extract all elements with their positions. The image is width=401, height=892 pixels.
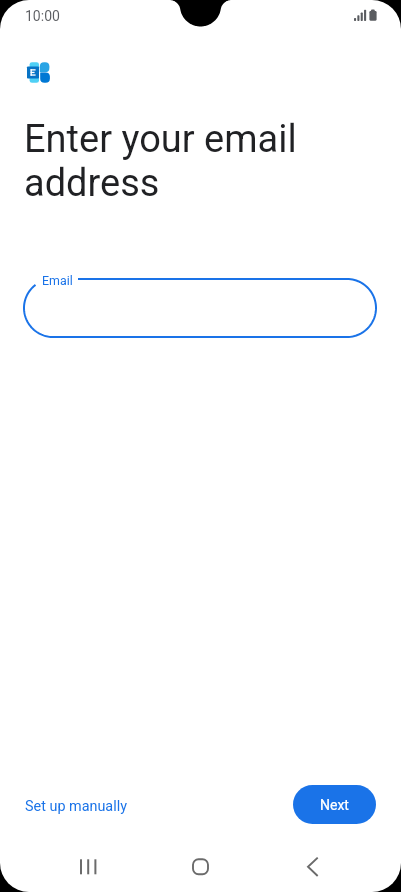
staticText: Next (320, 797, 349, 813)
button[interactable]: Home (168, 846, 232, 892)
button[interactable]: Email (24, 279, 376, 337)
other: Battery (369, 9, 378, 22)
button[interactable]: Back (280, 846, 344, 892)
button[interactable]: Next (293, 785, 376, 824)
staticText: Set up manually (25, 798, 127, 815)
staticText: 10:00 (25, 8, 60, 24)
button[interactable]: Recent apps (56, 846, 120, 892)
staticText: Enter your email address (24, 117, 324, 205)
button[interactable]: Set up manually (18, 792, 134, 821)
other: Mobile signal (354, 9, 365, 21)
staticText: Email (42, 273, 73, 288)
